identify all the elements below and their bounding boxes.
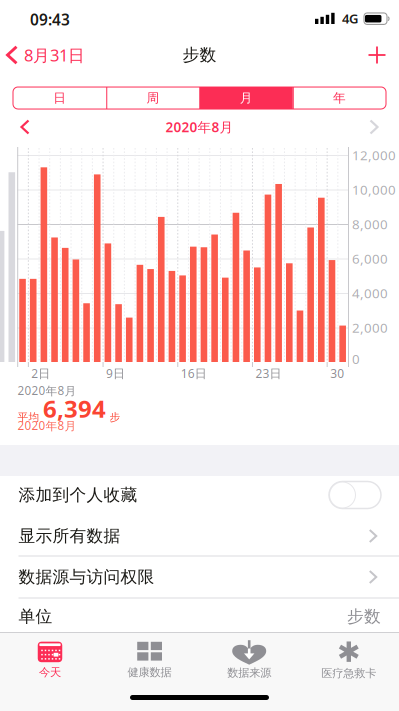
- staticText: 今天: [39, 665, 61, 679]
- button[interactable]: 月: [199, 87, 293, 109]
- staticText: 6,394: [43, 392, 106, 425]
- staticText: 健康数据: [128, 665, 172, 679]
- staticText: 4,000: [352, 284, 388, 302]
- staticText: 10,000: [352, 180, 396, 199]
- button[interactable]: 添加到个人收藏: [0, 476, 399, 514]
- staticText: 月: [240, 90, 253, 106]
- button[interactable]: 周: [106, 87, 199, 109]
- staticText: 数据来源: [227, 666, 271, 680]
- button[interactable]: 单位: [0, 596, 399, 636]
- staticText: 步: [109, 410, 120, 424]
- staticText: 显示所有数据: [18, 525, 120, 546]
- button[interactable]: 8月31日: [4, 44, 124, 66]
- staticText: 23日: [255, 365, 281, 381]
- staticText: 年: [333, 90, 346, 106]
- staticText: 2日: [31, 365, 50, 381]
- staticText: 单位: [18, 606, 52, 627]
- staticText: 0: [352, 350, 360, 368]
- staticText: 8,000: [352, 215, 388, 233]
- staticText: 4G: [342, 10, 358, 27]
- staticText: 2020年8月: [17, 417, 76, 433]
- staticText: 09:43: [30, 9, 70, 30]
- staticText: 2020年8月: [17, 382, 76, 398]
- staticText: 步数: [347, 606, 381, 627]
- staticText: 医疗急救卡: [321, 666, 376, 680]
- button[interactable]: 健康数据: [101, 637, 199, 683]
- button[interactable]: 数据源与访问权限: [0, 557, 399, 597]
- staticText: 16日: [181, 365, 207, 381]
- staticText: 步数: [182, 44, 216, 66]
- button[interactable]: 医疗急救卡: [300, 637, 398, 683]
- button[interactable]: 上个月: [13, 115, 37, 139]
- staticText: 添加到个人收藏: [18, 484, 137, 505]
- staticText: 数据源与访问权限: [18, 566, 154, 587]
- staticText: 2,000: [352, 318, 388, 337]
- button[interactable]: 数据来源: [200, 637, 298, 683]
- button[interactable]: 添加数据: [368, 46, 385, 63]
- staticText: 周: [146, 90, 159, 106]
- staticText: 2020年8月: [165, 118, 233, 136]
- button[interactable]: 年: [293, 87, 386, 109]
- button[interactable]: 下个月: [362, 115, 386, 139]
- staticText: 8月31日: [24, 44, 85, 66]
- button[interactable]: 日: [13, 87, 106, 109]
- button[interactable]: 今天: [1, 637, 99, 683]
- staticText: 日: [53, 90, 66, 106]
- staticText: 6,000: [352, 249, 388, 268]
- staticText: 30: [330, 365, 344, 381]
- staticText: 平均: [17, 410, 39, 424]
- staticText: 12,000: [352, 146, 396, 164]
- button[interactable]: 显示所有数据: [0, 516, 399, 556]
- staticText: 9日: [106, 365, 125, 381]
